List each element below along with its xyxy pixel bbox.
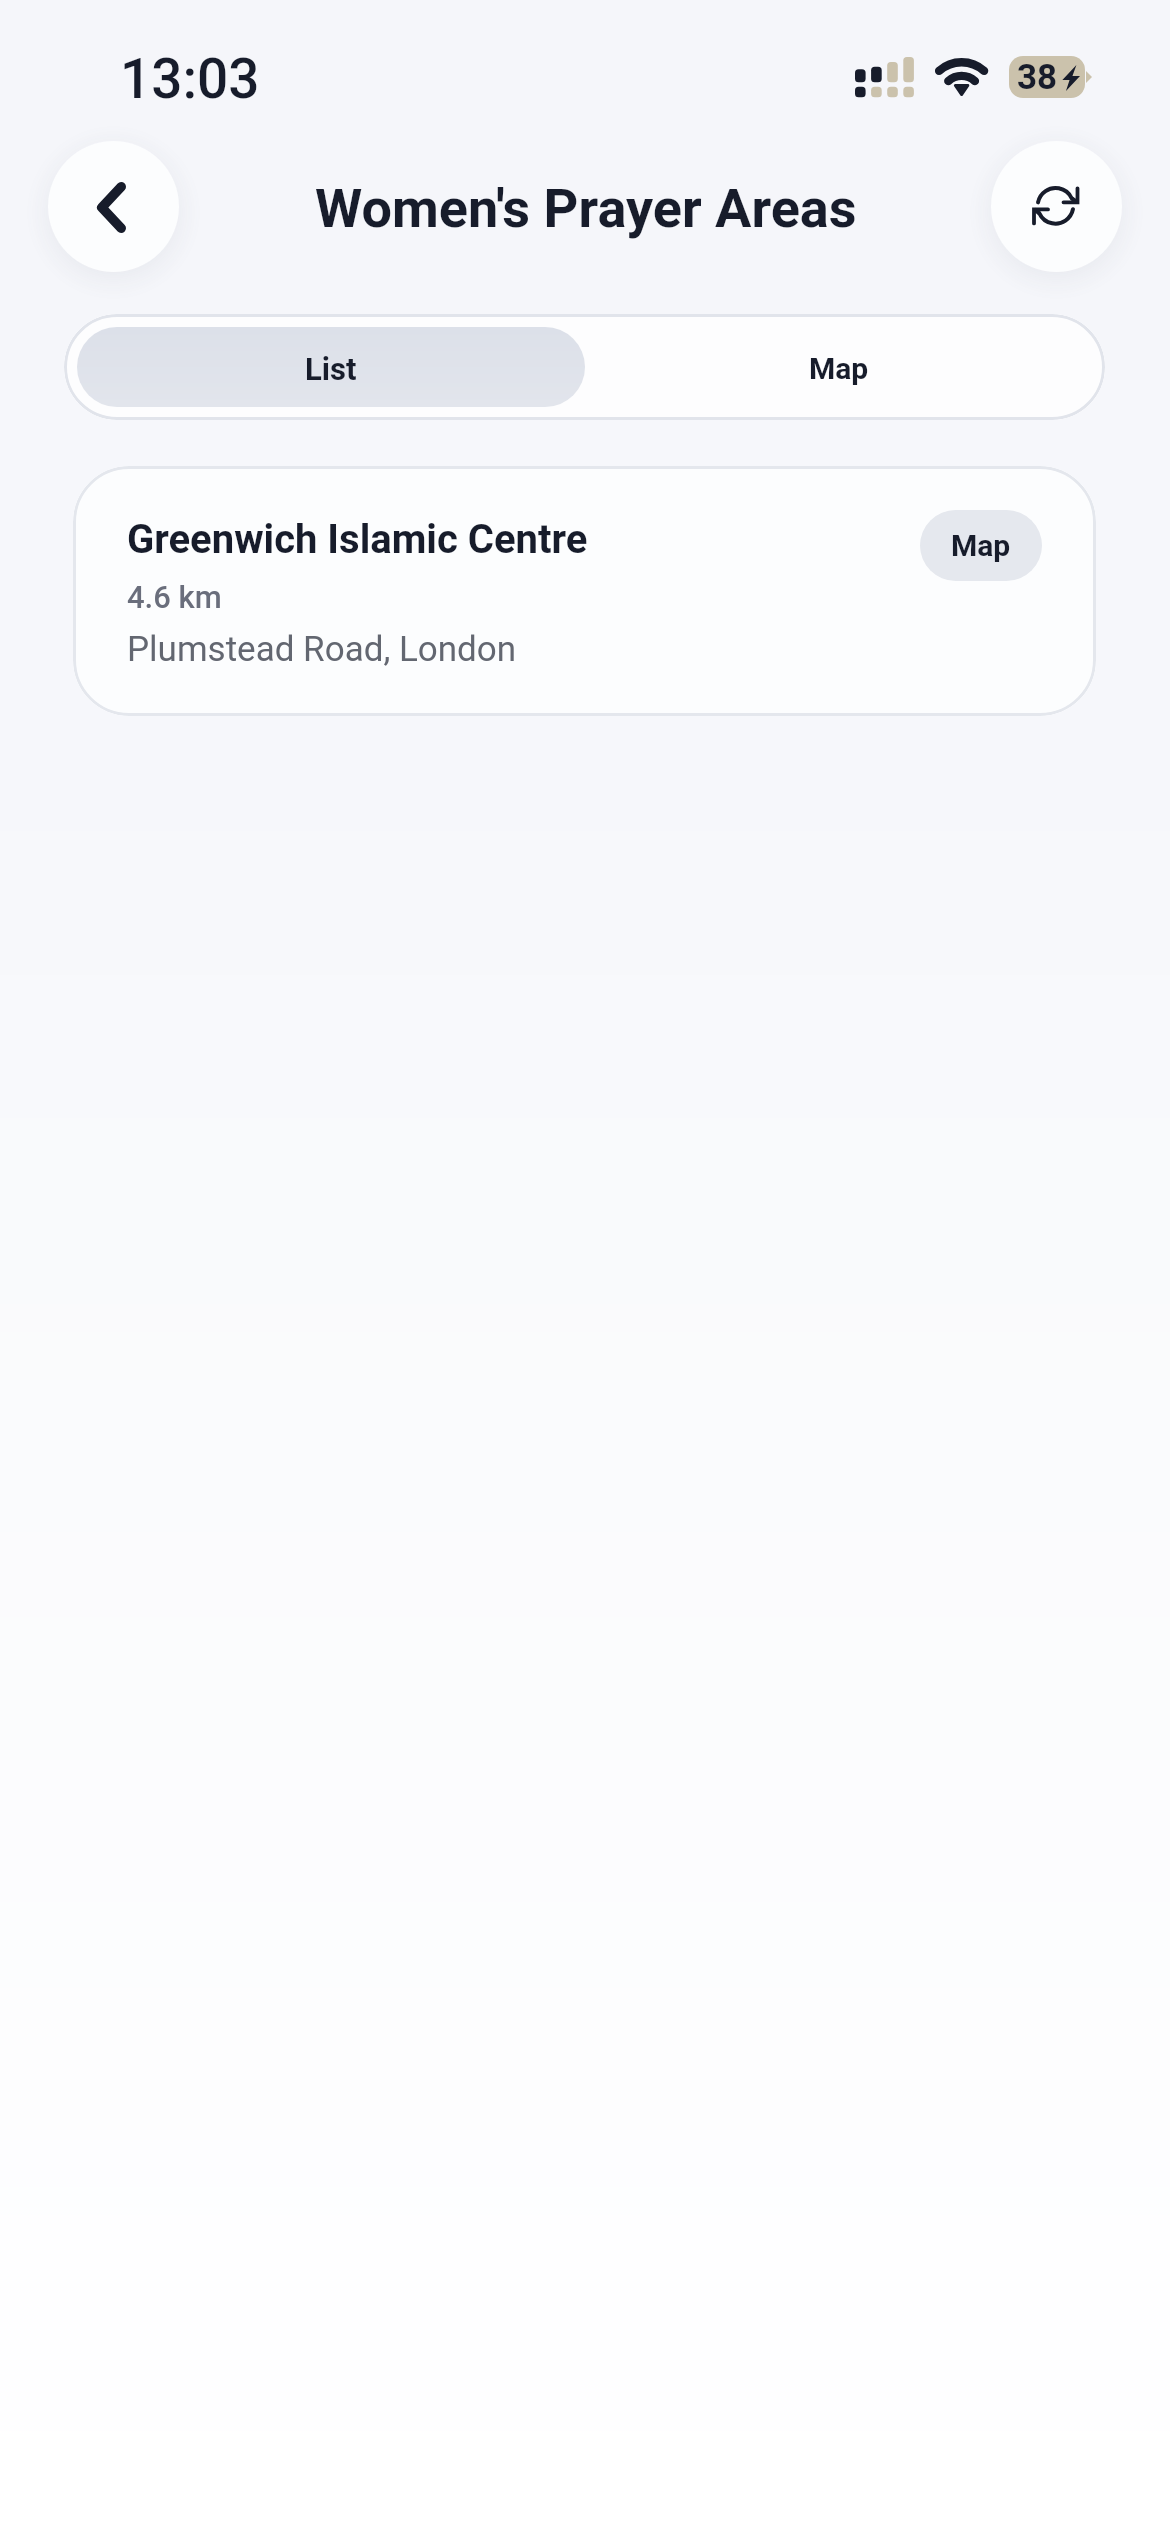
staticText: Map bbox=[951, 528, 1011, 563]
button[interactable]: Map bbox=[920, 510, 1042, 581]
staticText: 4.6 km bbox=[127, 579, 222, 615]
staticText: Greenwich Islamic Centre bbox=[127, 516, 588, 563]
staticText: List bbox=[305, 351, 357, 387]
button[interactable]: Refresh bbox=[991, 141, 1122, 272]
staticText: Map bbox=[809, 351, 869, 386]
staticText: Plumstead Road, London bbox=[127, 629, 517, 670]
staticText: 13:03 bbox=[120, 47, 260, 111]
button[interactable]: Back bbox=[48, 141, 179, 272]
button[interactable]: List bbox=[77, 327, 585, 407]
staticText: Women's Prayer Areas bbox=[315, 177, 857, 240]
button[interactable]: Greenwich Islamic Centre bbox=[73, 466, 1096, 716]
staticText: 38 bbox=[1017, 57, 1058, 98]
button[interactable]: Map bbox=[585, 327, 1092, 407]
